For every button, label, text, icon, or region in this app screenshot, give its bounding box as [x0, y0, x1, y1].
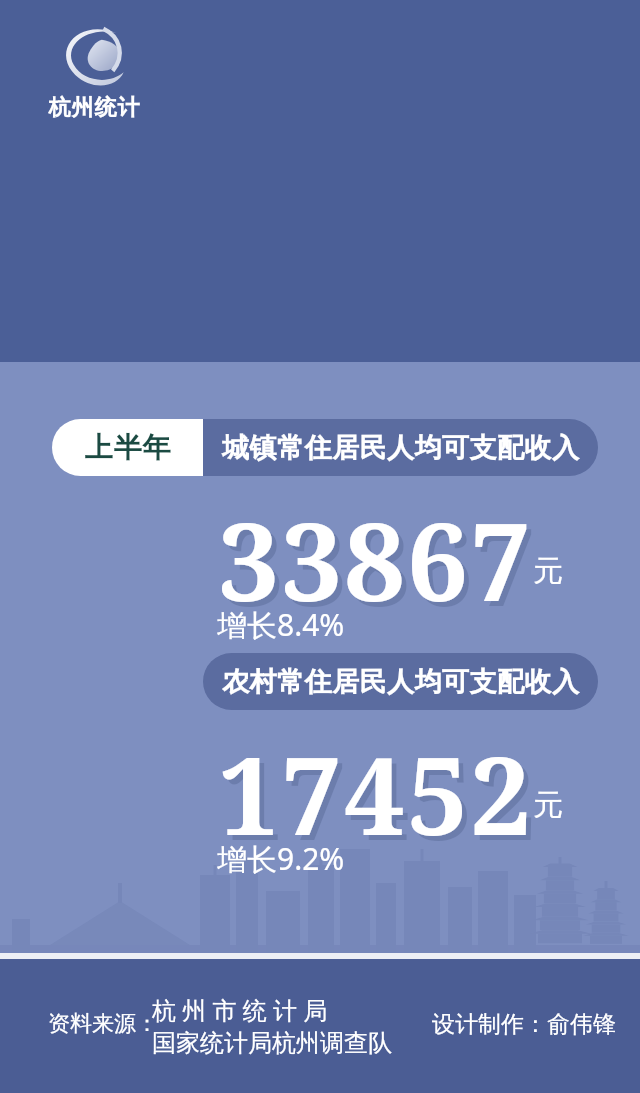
staticText: 杭 州 市 统 计 局 — [152, 993, 328, 1026]
staticText: 33867 — [223, 491, 539, 638]
staticText: 设计制作：俞伟锋 — [432, 1010, 616, 1039]
staticText: 城镇常住居民人均可支配收入 — [222, 431, 580, 465]
staticText: 农村常住居民人均可支配收入 — [222, 665, 580, 699]
staticText: 17452 — [218, 720, 534, 867]
staticText: 增长9.2% — [217, 838, 345, 879]
staticText: 资料来源： — [48, 1010, 158, 1038]
staticText: 33867 — [218, 486, 534, 633]
staticText: 上半年 — [84, 430, 171, 465]
staticText: 杭州统计 — [48, 94, 140, 122]
staticText: 元 — [533, 786, 563, 824]
other: 杭州统计 logo — [48, 22, 140, 122]
staticText: 国家统计局杭州调查队 — [152, 1028, 392, 1058]
staticText: 增长8.4% — [217, 604, 345, 645]
button[interactable]: 上半年 — [52, 419, 598, 476]
staticText: 元 — [533, 552, 563, 590]
staticText: 17452 — [223, 725, 539, 872]
button[interactable]: 农村常住居民人均可支配收入 — [203, 653, 598, 710]
